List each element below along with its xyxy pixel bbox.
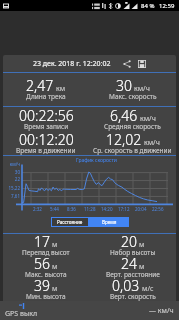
staticText: — км/ч	[149, 306, 174, 316]
button[interactable]: 20	[89, 234, 176, 256]
staticText: м/с	[142, 284, 154, 294]
staticText: GPS выкл	[5, 309, 38, 319]
staticText: 56	[34, 254, 50, 273]
staticText: 17	[34, 232, 50, 251]
staticText: График скорости	[76, 157, 117, 164]
button[interactable]: 56	[3, 256, 89, 278]
staticText: Макс. скорость	[109, 92, 157, 101]
staticText: Расстояние	[57, 219, 83, 225]
button[interactable]: 12,02	[89, 131, 176, 155]
staticText: Верт. скорость	[110, 292, 156, 301]
staticText: Ср. скорость в движении	[93, 146, 172, 155]
staticText: 20	[121, 232, 137, 251]
staticText: 00:22:56	[19, 106, 74, 125]
staticText: 20:04	[135, 206, 147, 212]
staticText: км/ч	[134, 84, 150, 94]
staticText: 2,47	[26, 76, 54, 95]
staticText: 8:36	[67, 206, 76, 212]
staticText: 30	[3, 169, 20, 175]
staticText: км/ч	[144, 138, 160, 148]
staticText: 39	[34, 276, 50, 295]
staticText: Макс. высота	[25, 270, 67, 279]
button[interactable]: Share	[122, 59, 131, 68]
staticText: График высот	[3, 305, 176, 312]
staticText: Время в движении	[16, 146, 76, 155]
staticText: км	[56, 84, 66, 94]
button[interactable]: 30	[89, 73, 176, 106]
staticText: 23 дек. 2018 г. 12:20:02	[33, 59, 111, 69]
staticText: м	[52, 240, 58, 250]
staticText: Длина трека	[26, 92, 66, 101]
staticText: Время записи	[24, 122, 69, 131]
staticText: 14:20	[101, 206, 113, 212]
staticText: Мин. высота	[26, 292, 66, 301]
staticText: 00:12:20	[19, 130, 74, 149]
staticText: 11:28	[84, 206, 96, 212]
button[interactable]: Save	[137, 59, 146, 68]
staticText: 22:56	[152, 206, 164, 212]
staticText: 7,61	[3, 193, 20, 199]
button[interactable]: 6,46	[89, 107, 176, 131]
staticText: м	[52, 284, 58, 294]
staticText: 24	[121, 254, 137, 273]
staticText: 84 %	[141, 2, 155, 10]
staticText: 0,03	[112, 276, 140, 295]
button[interactable]: 17	[3, 234, 89, 256]
staticText: Набор высоты	[110, 248, 156, 257]
button[interactable]: Время	[89, 217, 129, 227]
staticText: м	[139, 240, 145, 250]
button[interactable]: 24	[89, 256, 176, 278]
button[interactable]: 2,47	[3, 73, 89, 106]
staticText: 30	[116, 76, 132, 95]
staticText: 17:12	[118, 206, 130, 212]
staticText: 12,02	[106, 130, 142, 149]
staticText: Средняя скорость	[104, 122, 161, 131]
staticText: 5:44	[50, 206, 59, 212]
button[interactable]: 00:12:20	[3, 131, 89, 155]
button[interactable]: 39	[3, 278, 89, 301]
staticText: м	[139, 262, 145, 272]
staticText: Перепад высот	[22, 248, 70, 257]
staticText: Время	[102, 219, 117, 225]
staticText: км/ч	[140, 114, 156, 124]
staticText: 2:32	[33, 206, 42, 212]
staticText: 6,46	[110, 106, 138, 125]
staticText: 22	[3, 176, 20, 182]
staticText: 12:59	[159, 2, 175, 10]
button[interactable]: 00:22:56	[3, 107, 89, 131]
button[interactable]: 0,03	[89, 278, 176, 301]
staticText: м	[52, 262, 58, 272]
staticText: 15,22	[3, 185, 20, 191]
staticText: км/ч	[3, 161, 20, 167]
button[interactable]: Расстояние	[51, 217, 89, 227]
staticText: Верт. расстояние	[106, 270, 160, 279]
